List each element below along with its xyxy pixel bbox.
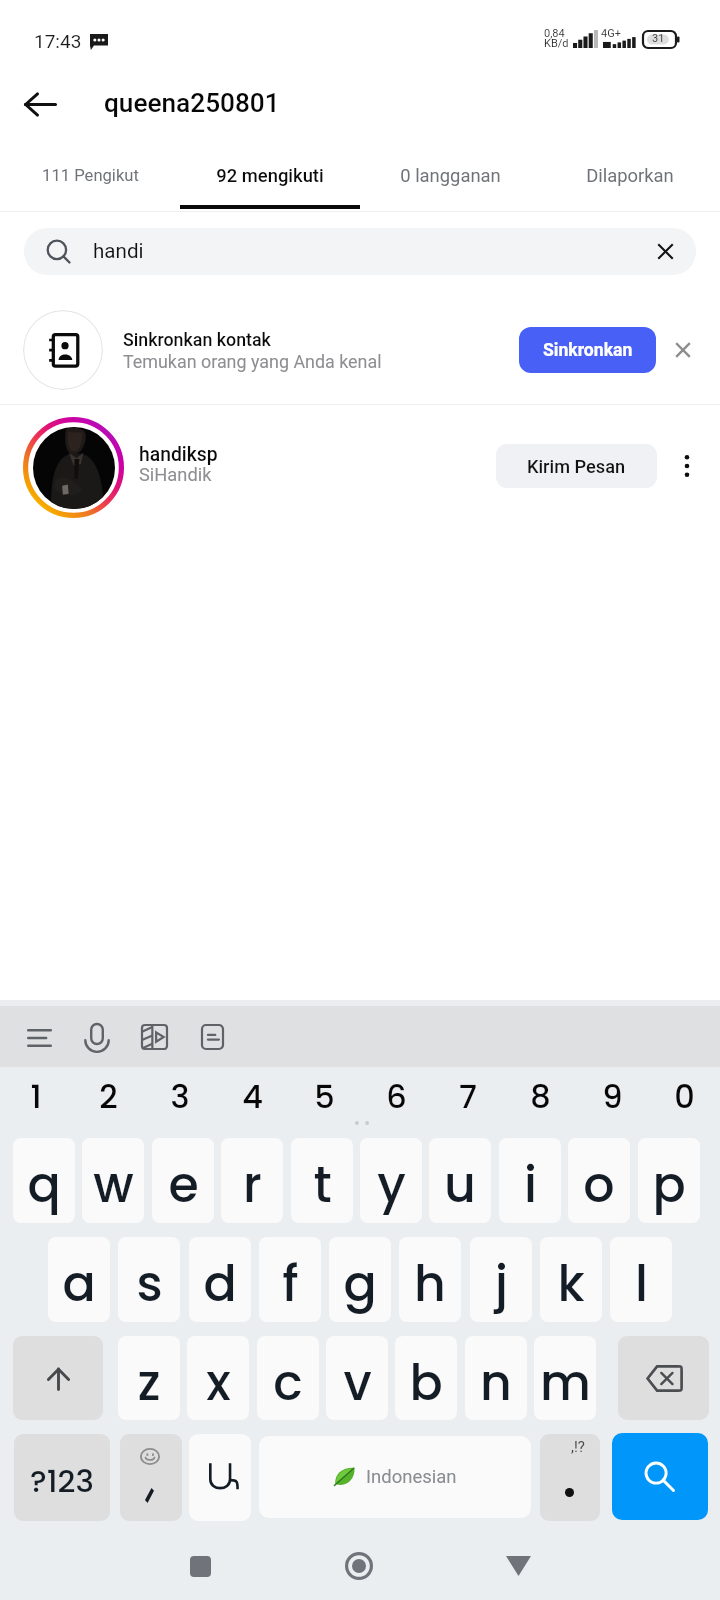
- staticText: q: [27, 1151, 61, 1220]
- button[interactable]: handiksp: [0, 409, 720, 525]
- button[interactable]: Home: [323, 1530, 395, 1600]
- button[interactable]: Sinkronkan kontak: [0, 276, 720, 404]
- button[interactable]: u: [429, 1138, 491, 1223]
- button[interactable]: a: [48, 1237, 110, 1322]
- staticText: p: [652, 1151, 686, 1220]
- button[interactable]: Voice input: [77, 1018, 117, 1058]
- button[interactable]: More options: [667, 446, 707, 486]
- button[interactable]: c: [257, 1336, 319, 1420]
- button[interactable]: r: [221, 1138, 283, 1223]
- staticText: handiksp: [139, 443, 218, 466]
- button[interactable]: e: [152, 1138, 214, 1223]
- button[interactable]: f: [259, 1237, 321, 1322]
- button[interactable]: k: [540, 1237, 602, 1322]
- staticText: 9: [602, 1074, 623, 1119]
- button[interactable]: Back: [10, 74, 70, 134]
- button[interactable]: j: [470, 1237, 532, 1322]
- staticText: v: [343, 1349, 372, 1418]
- button[interactable]: y: [360, 1138, 422, 1223]
- staticText: n: [480, 1349, 512, 1418]
- staticText: Temukan orang yang Anda kenal: [123, 351, 382, 372]
- button[interactable]: Recent apps: [164, 1530, 236, 1600]
- staticText: j: [495, 1250, 508, 1319]
- button[interactable]: Search: [612, 1433, 708, 1520]
- button[interactable]: 0: [648, 1067, 720, 1137]
- button[interactable]: Back: [482, 1530, 554, 1600]
- staticText: 0 langganan: [400, 165, 501, 187]
- button[interactable]: Shift: [13, 1336, 103, 1420]
- button[interactable]: n: [465, 1336, 527, 1420]
- staticText: 2: [99, 1074, 118, 1119]
- button[interactable]: 92 mengikuti: [180, 146, 360, 205]
- staticText: 17:43: [34, 30, 82, 52]
- button[interactable]: 8: [504, 1067, 576, 1137]
- staticText: 8: [530, 1074, 551, 1119]
- staticText: Indonesian: [366, 1466, 457, 1488]
- button[interactable]: 1: [0, 1067, 72, 1137]
- button[interactable]: o: [568, 1138, 630, 1223]
- staticText: w: [93, 1151, 134, 1220]
- button[interactable]: 4: [216, 1067, 288, 1137]
- button[interactable]: Clear: [642, 228, 689, 275]
- button[interactable]: Emoji: [120, 1434, 182, 1521]
- button[interactable]: 0 langganan: [360, 146, 540, 205]
- staticText: m: [540, 1349, 591, 1418]
- staticText: 7: [459, 1074, 477, 1119]
- staticText: SiHandik: [139, 464, 212, 485]
- staticText: k: [557, 1250, 585, 1319]
- staticText: s: [136, 1250, 163, 1319]
- button[interactable]: v: [326, 1336, 388, 1420]
- button[interactable]: Kirim Pesan: [496, 444, 657, 488]
- button[interactable]: 111 Pengikut: [0, 146, 180, 205]
- staticText: 92 mengikuti: [216, 165, 324, 187]
- button[interactable]: 5: [288, 1067, 360, 1137]
- staticText: Sinkronkan: [543, 340, 633, 361]
- button[interactable]: d: [189, 1237, 251, 1322]
- button[interactable]: 9: [576, 1067, 648, 1137]
- staticText: d: [203, 1250, 237, 1319]
- staticText: 4G+: [601, 27, 621, 40]
- button[interactable]: q: [13, 1138, 75, 1223]
- staticText: KB/d: [544, 37, 569, 50]
- staticText: r: [243, 1151, 262, 1220]
- staticText: 0,84: [544, 27, 565, 40]
- button[interactable]: 7: [432, 1067, 504, 1137]
- staticText: Dilaporkan: [586, 165, 674, 187]
- staticText: queena250801: [104, 88, 280, 119]
- button[interactable]: 6: [360, 1067, 432, 1137]
- staticText: Sinkronkan kontak: [123, 329, 271, 350]
- button[interactable]: w: [82, 1138, 144, 1223]
- button[interactable]: t: [291, 1138, 353, 1223]
- button[interactable]: x: [187, 1336, 249, 1420]
- button[interactable]: h: [399, 1237, 461, 1322]
- staticText: f: [282, 1250, 299, 1319]
- button[interactable]: m: [534, 1336, 596, 1420]
- button[interactable]: b: [395, 1336, 457, 1420]
- button[interactable]: ?123: [14, 1434, 110, 1521]
- button[interactable]: handi: [24, 228, 696, 275]
- button[interactable]: l: [610, 1237, 672, 1322]
- button[interactable]: Period: [540, 1434, 600, 1521]
- button[interactable]: GIF: [134, 1017, 174, 1057]
- staticText: u: [444, 1151, 476, 1220]
- staticText: 5: [314, 1074, 335, 1119]
- button[interactable]: Dilaporkan: [540, 146, 720, 205]
- staticText: 4: [242, 1074, 263, 1119]
- button[interactable]: Indonesian: [259, 1436, 531, 1518]
- staticText: o: [583, 1151, 615, 1220]
- button[interactable]: z: [118, 1336, 180, 1420]
- button[interactable]: Menu: [19, 1018, 59, 1058]
- button[interactable]: p: [638, 1138, 700, 1223]
- button[interactable]: g: [329, 1237, 391, 1322]
- button[interactable]: 3: [144, 1067, 216, 1137]
- button[interactable]: Clipboard: [192, 1017, 232, 1057]
- staticText: t: [313, 1151, 332, 1220]
- button[interactable]: 2: [72, 1067, 144, 1137]
- button[interactable]: Sinkronkan: [519, 327, 656, 373]
- button[interactable]: s: [118, 1237, 180, 1322]
- button[interactable]: i: [499, 1138, 561, 1223]
- staticText: ,!?: [571, 1438, 585, 1456]
- button[interactable]: Language: [189, 1434, 251, 1521]
- button[interactable]: Dismiss: [663, 330, 703, 370]
- button[interactable]: Backspace: [618, 1336, 709, 1420]
